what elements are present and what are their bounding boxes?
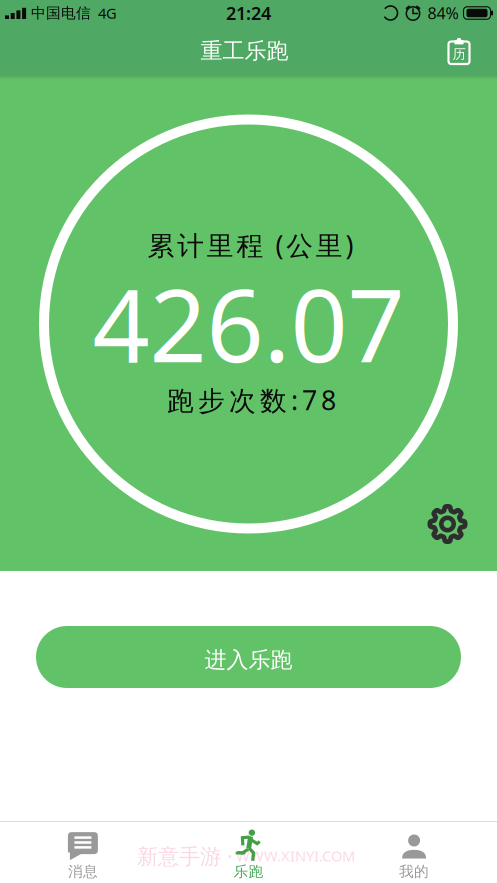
staticText: 历 [452, 46, 465, 62]
button[interactable]: 进入乐跑 [36, 626, 461, 688]
staticText: 新意手游 · [137, 842, 233, 870]
staticText: 中国电信 [31, 4, 91, 22]
staticText: 进入乐跑 [204, 646, 292, 674]
button[interactable]: 跑步日历 [443, 35, 475, 67]
staticText: WWW.XINYI.COM [236, 846, 355, 866]
button[interactable]: 我的 [331, 822, 497, 883]
staticText: 重工乐跑 [200, 37, 288, 65]
button[interactable]: 设置 [423, 500, 471, 548]
staticText: 21:24 [226, 1, 271, 25]
staticText: 我的 [399, 863, 429, 881]
button[interactable]: 乐跑 [166, 822, 331, 883]
staticText: 426.07 [92, 257, 404, 390]
staticText: 跑步次数:78 [167, 382, 336, 418]
button[interactable]: 消息 [0, 822, 166, 883]
staticText: 消息 [68, 863, 98, 881]
staticText: 乐跑 [233, 863, 263, 881]
staticText: 累计里程 (公里) [148, 227, 353, 263]
staticText: 4G [98, 3, 117, 23]
staticText: 84% [427, 2, 458, 24]
